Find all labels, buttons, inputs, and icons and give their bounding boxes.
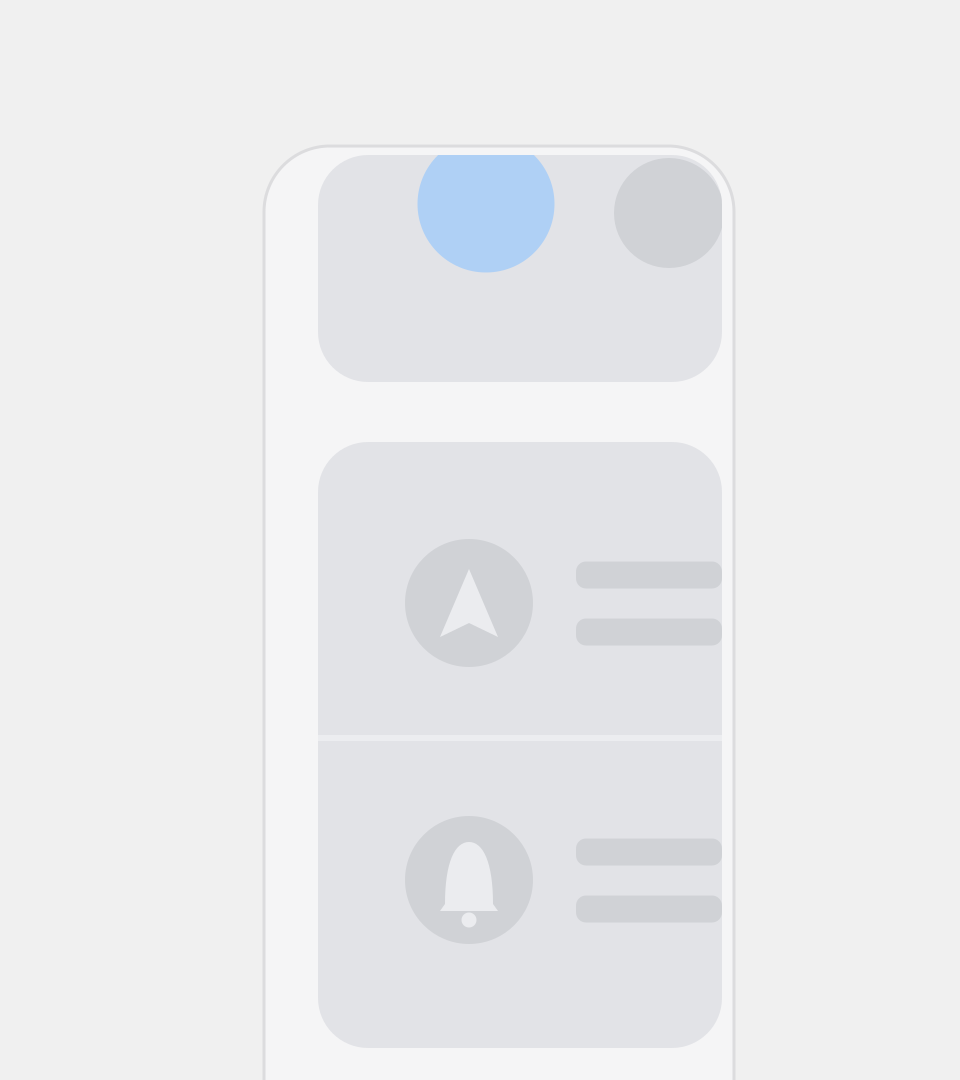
button[interactable]: Notifications [318, 442, 722, 1048]
button[interactable]: Profile [417, 135, 554, 272]
button[interactable]: Navigation [318, 442, 722, 1048]
button[interactable]: More options [614, 158, 724, 268]
